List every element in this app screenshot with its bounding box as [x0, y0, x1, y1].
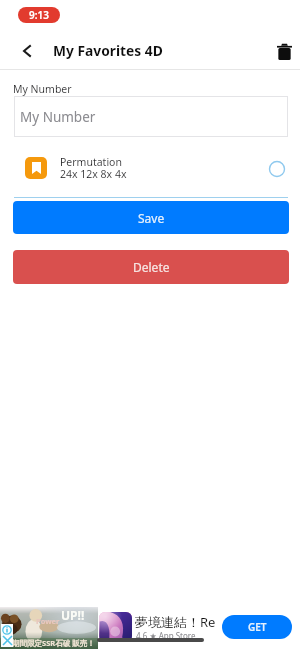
button[interactable]: Save	[13, 201, 289, 234]
staticText: GET	[248, 620, 267, 634]
staticText: My Favorites 4D	[53, 41, 163, 60]
button[interactable]: Back	[12, 36, 42, 66]
staticText: My Number	[20, 108, 96, 126]
staticText: 夢境連結！Re	[135, 613, 216, 631]
staticText: My Number	[13, 82, 72, 96]
button[interactable]: Advertisement	[0, 607, 98, 649]
button[interactable]: Permutation 24x 12x 8x 4x	[0, 144, 300, 191]
staticText: 期間限定SSR石破 販売！	[12, 638, 95, 648]
button[interactable]: GET	[222, 615, 292, 639]
staticText: 4.6 ★ App Store	[136, 630, 196, 641]
button[interactable]: Delete all	[269, 36, 299, 66]
button[interactable]: Delete	[13, 250, 289, 284]
staticText: UP!!	[61, 607, 85, 623]
staticText: Power	[36, 616, 60, 626]
staticText: Save	[138, 210, 165, 226]
staticText: Permutation 24x 12x 8x 4x	[60, 155, 127, 181]
staticText: 9:13	[29, 8, 49, 22]
staticText: Delete	[133, 259, 170, 275]
